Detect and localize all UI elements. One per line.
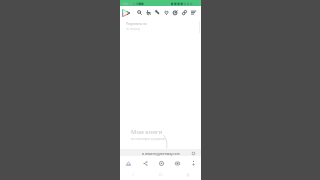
button[interactable]: Sort bbox=[189, 6, 198, 18]
staticText: все категории и разделы bbox=[131, 137, 165, 141]
button[interactable]: Open in new bbox=[171, 6, 180, 18]
button[interactable]: Bookmark bbox=[144, 6, 153, 18]
button[interactable]: Reload bbox=[191, 151, 196, 156]
button[interactable]: Attach bbox=[153, 6, 162, 18]
button[interactable]: More bbox=[185, 156, 201, 169]
staticText: по запросу bbox=[126, 27, 140, 31]
button[interactable]: Record bbox=[153, 156, 169, 169]
staticText: www.mygreenway.com bbox=[145, 152, 180, 156]
button[interactable]: Google Play bbox=[121, 8, 130, 17]
button[interactable]: Favorite bbox=[162, 6, 171, 18]
staticText: Мои книги bbox=[131, 128, 163, 136]
button[interactable]: Tabs bbox=[169, 156, 185, 169]
button[interactable]: Link bbox=[180, 6, 189, 18]
button[interactable]: Search bbox=[135, 6, 144, 18]
button[interactable]: Share bbox=[137, 156, 153, 169]
button[interactable]: Home bbox=[120, 156, 137, 169]
staticText: Результаты по bbox=[126, 22, 147, 26]
